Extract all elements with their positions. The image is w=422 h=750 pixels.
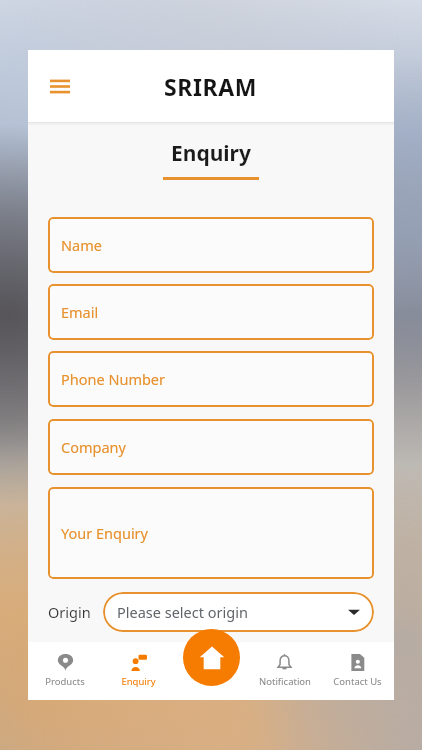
- staticText: Enquiry: [121, 675, 156, 688]
- staticText: SRIRAM: [164, 71, 258, 102]
- button[interactable]: Notification: [248, 648, 321, 694]
- button[interactable]: Enquiry: [102, 648, 175, 694]
- button[interactable]: Email: [48, 284, 374, 340]
- staticText: Phone Number: [61, 369, 166, 389]
- staticText: Products: [45, 675, 85, 688]
- staticText: Email: [61, 302, 99, 322]
- staticText: Please select origin: [117, 602, 248, 622]
- button[interactable]: Contact Us: [321, 648, 394, 694]
- button[interactable]: Name: [48, 217, 374, 273]
- button[interactable]: Phone Number: [48, 351, 374, 407]
- staticText: Enquiry: [171, 139, 251, 168]
- staticText: Your Enquiry: [61, 523, 148, 543]
- staticText: Contact Us: [333, 675, 382, 688]
- button[interactable]: Home: [183, 629, 240, 686]
- staticText: Notification: [259, 675, 311, 688]
- button[interactable]: Your Enquiry: [48, 487, 374, 579]
- staticText: Origin: [48, 602, 91, 622]
- button[interactable]: Please select origin: [103, 592, 374, 632]
- button[interactable]: Products: [28, 648, 102, 694]
- button[interactable]: Company: [48, 419, 374, 475]
- staticText: Name: [61, 235, 102, 255]
- staticText: Company: [61, 437, 126, 457]
- button[interactable]: Menu: [40, 66, 80, 106]
